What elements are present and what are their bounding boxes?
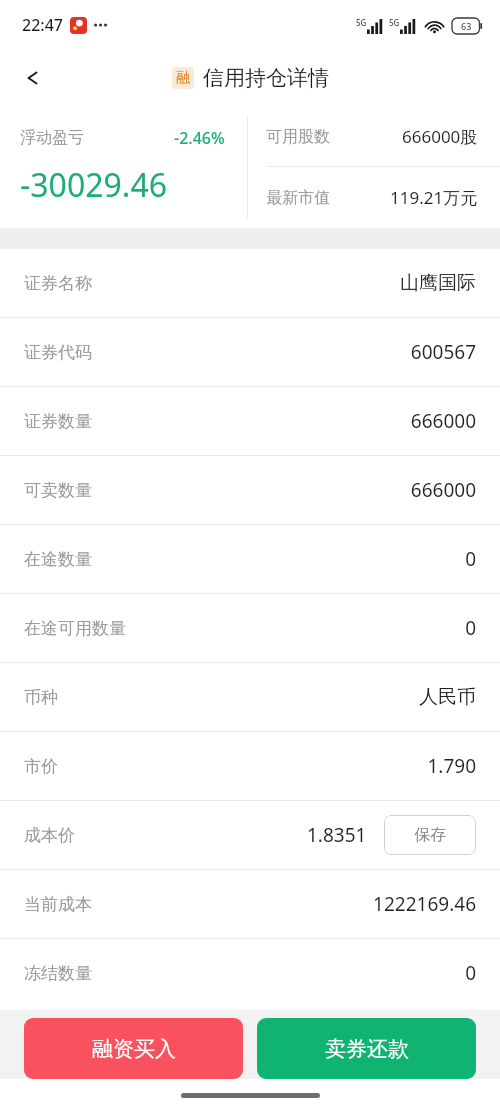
staticText: 1.790 [427,753,476,779]
staticText: 当前成本 [24,894,92,915]
staticText: 0 [465,615,476,641]
staticText: 666000 [410,477,476,503]
staticText: 1222169.46 [373,891,476,917]
staticText: 浮动盈亏 [20,128,84,148]
staticText: 卖券还款 [325,1036,409,1062]
staticText: 市价 [24,756,58,777]
button[interactable]: 证券代码 [0,318,500,386]
staticText: 最新市值 [266,188,330,208]
staticText: 1.8351 [307,822,367,848]
staticText: -30029.46 [20,163,168,207]
button[interactable]: Back [10,55,56,101]
button[interactable]: 币种 [0,663,500,731]
button[interactable]: 在途可用数量 [0,594,500,662]
staticText: 666000 [410,408,476,434]
staticText: 融 [176,69,190,87]
staticText: 63 [461,20,472,32]
button[interactable]: 卖券还款 [257,1018,476,1079]
staticText: 证券数量 [24,411,92,432]
staticText: 成本价 [24,825,75,846]
staticText: 信用持仓详情 [203,65,329,91]
staticText: 在途数量 [24,549,92,570]
staticText: 证券名称 [24,273,92,294]
button[interactable]: 当前成本 [0,870,500,938]
staticText: 0 [465,546,476,572]
button[interactable]: 在途数量 [0,525,500,593]
staticText: 人民币 [419,685,476,709]
staticText: 600567 [410,339,476,365]
staticText: 融资买入 [92,1036,176,1062]
button[interactable]: 可卖数量 [0,456,500,524]
staticText: 保存 [414,825,446,845]
staticText: 山鹰国际 [400,271,476,295]
staticText: 在途可用数量 [24,618,126,639]
staticText: 证券代码 [24,342,92,363]
staticText: 22:47 [22,14,63,36]
staticText: 5G [356,17,367,28]
button[interactable]: 融资买入 [24,1018,243,1079]
staticText: 冻结数量 [24,963,92,984]
staticText: 5G [389,17,400,28]
staticText: 可卖数量 [24,480,92,501]
staticText: 币种 [24,687,58,708]
staticText: -2.46% [174,127,225,149]
staticText: 666000股 [402,125,478,148]
staticText: 119.21万元 [390,186,478,209]
button[interactable]: 冻结数量 [0,939,500,1007]
button[interactable]: 证券名称 [0,249,500,317]
staticText: 0 [465,960,476,986]
staticText: 可用股数 [266,127,330,147]
button[interactable]: 保存 [384,815,476,855]
button[interactable]: 证券数量 [0,387,500,455]
button[interactable]: 市价 [0,732,500,800]
